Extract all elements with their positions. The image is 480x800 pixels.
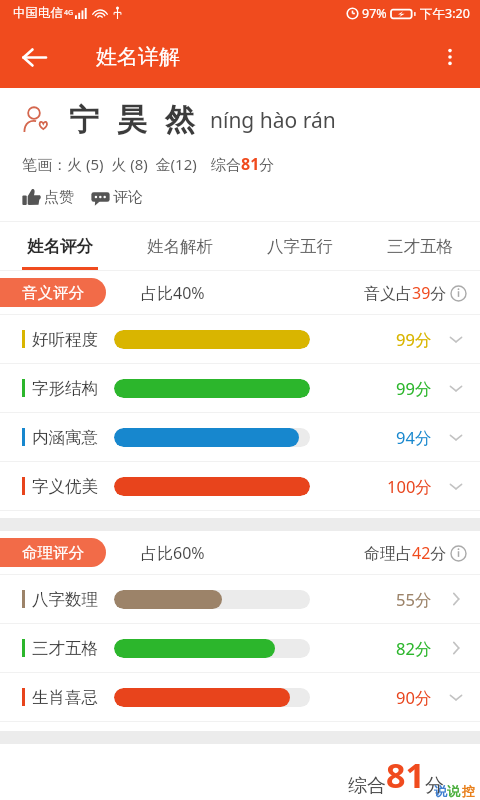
staticText: 97% [362, 5, 387, 22]
staticText: 姓名解析 [147, 236, 213, 257]
staticText: 综合81分 [211, 153, 275, 175]
staticText: 99分 [396, 328, 432, 351]
button[interactable]: 三才五格 [0, 624, 480, 672]
staticText: 94分 [396, 426, 432, 449]
staticText: 字形结构 [32, 378, 98, 399]
staticText: 好听程度 [32, 329, 98, 350]
button[interactable]: 命理评分 [0, 538, 106, 567]
staticText: 然 [165, 101, 195, 139]
button[interactable]: Info [450, 285, 467, 302]
button[interactable]: 音义评分 [0, 278, 106, 307]
staticText: 中国电信 [13, 5, 63, 21]
button[interactable]: 内涵寓意 [0, 413, 480, 461]
button[interactable]: Info [450, 545, 467, 562]
staticText: 90分 [396, 686, 432, 709]
staticText: 占比40% [141, 282, 205, 304]
button[interactable]: Expand 字义优美 [445, 475, 467, 497]
staticText: 占比60% [141, 542, 205, 564]
button[interactable]: 生肖喜忌 [0, 673, 480, 721]
button[interactable]: 字形结构 [0, 364, 480, 412]
button[interactable]: 姓名解析 [120, 222, 240, 270]
staticText: 82分 [396, 637, 432, 660]
staticText: 分 [425, 774, 444, 798]
staticText: 100分 [387, 475, 432, 498]
button[interactable]: Expand 字形结构 [445, 377, 467, 399]
button[interactable]: Expand 内涵寓意 [445, 426, 467, 448]
staticText: 评论 [113, 188, 143, 207]
button[interactable]: More options [428, 35, 472, 79]
staticText: 内涵寓意 [32, 427, 98, 448]
button[interactable]: 姓名评分 [0, 222, 120, 270]
button[interactable]: 字义优美 [0, 462, 480, 510]
staticText: 综合 [348, 774, 386, 798]
staticText: 下午3:20 [420, 5, 470, 22]
button[interactable]: 八字数理 [0, 575, 480, 623]
staticText: 昊 [117, 101, 147, 139]
button[interactable]: 评论 [91, 188, 143, 207]
staticText: 生肖喜忌 [32, 687, 98, 708]
button[interactable]: 三才五格 [360, 222, 480, 270]
staticText: 姓名评分 [27, 236, 93, 257]
staticText: 说 [434, 783, 447, 799]
button[interactable]: Expand 生肖喜忌 [445, 686, 467, 708]
button[interactable]: 八字五行 [240, 222, 360, 270]
button[interactable]: Open 三才五格 [445, 637, 467, 659]
staticText: 笔画：火 (5) 火 (8) 金(12) [22, 154, 197, 174]
staticText: 命理评分 [22, 543, 84, 563]
button[interactable]: Back [12, 35, 56, 79]
staticText: 八字五行 [267, 236, 333, 257]
staticText: níng hào rán [210, 106, 336, 135]
staticText: 81 [386, 752, 425, 798]
staticText: 55分 [396, 588, 432, 611]
staticText: 命理占42分 [364, 542, 447, 564]
staticText: 说 [447, 783, 460, 799]
button[interactable]: 好听程度 [0, 315, 480, 363]
staticText: 八字数理 [32, 589, 98, 610]
staticText: 音义占39分 [364, 282, 447, 304]
button[interactable]: Open 八字数理 [445, 588, 467, 610]
staticText: 99分 [396, 377, 432, 400]
button[interactable]: 点赞 [22, 188, 74, 207]
staticText: 三才五格 [387, 236, 453, 257]
staticText: 宁 [69, 101, 99, 139]
staticText: 4G [64, 8, 74, 18]
staticText: 三才五格 [32, 638, 98, 659]
staticText: 点赞 [44, 188, 74, 207]
button[interactable]: Expand 好听程度 [445, 328, 467, 350]
staticText: 控 [462, 783, 475, 799]
staticText: 字义优美 [32, 476, 98, 497]
staticText: 姓名详解 [96, 44, 180, 70]
staticText: 音义评分 [22, 283, 84, 303]
